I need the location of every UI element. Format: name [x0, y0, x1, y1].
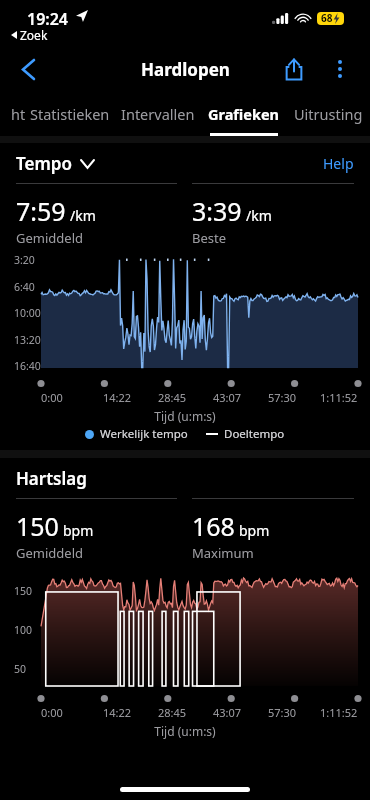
- button[interactable]: Terug: [8, 49, 48, 89]
- button[interactable]: Delen: [274, 49, 314, 89]
- staticText: bpm: [63, 521, 94, 540]
- staticText: Maximum: [192, 544, 254, 562]
- button[interactable]: Tempo: [16, 152, 94, 175]
- staticText: 50: [14, 662, 27, 676]
- staticText: 14:22: [103, 390, 132, 405]
- staticText: 0:00: [41, 390, 63, 405]
- staticText: 57:30: [268, 390, 297, 405]
- staticText: 28:45: [158, 705, 187, 720]
- staticText: 57:30: [268, 705, 297, 720]
- button[interactable]: ht: [0, 92, 26, 136]
- staticText: 3:39: [192, 194, 242, 228]
- staticText: Help: [323, 154, 354, 173]
- staticText: 28:45: [158, 390, 187, 405]
- staticText: Doeltempo: [224, 426, 285, 442]
- staticText: 150: [16, 509, 59, 543]
- staticText: 7:59: [16, 194, 66, 228]
- staticText: 16:40: [14, 359, 41, 373]
- staticText: 100: [14, 623, 33, 637]
- staticText: Uitrusting: [294, 104, 363, 124]
- button[interactable]: Help: [323, 154, 354, 173]
- staticText: Tempo: [16, 152, 72, 175]
- staticText: Hardlopen: [141, 58, 230, 81]
- button[interactable]: Uitrusting: [286, 92, 370, 136]
- staticText: Tijd (u:m:s): [0, 723, 370, 739]
- staticText: 14:22: [103, 705, 132, 720]
- staticText: Gemiddeld: [16, 544, 83, 562]
- staticText: 10:00: [14, 306, 41, 320]
- staticText: Hartslag: [16, 467, 87, 490]
- staticText: bpm: [239, 521, 270, 540]
- staticText: Statistieken: [30, 104, 110, 124]
- staticText: Intervallen: [121, 104, 195, 124]
- staticText: 6:40: [14, 280, 35, 294]
- staticText: 1:11:52: [320, 705, 358, 720]
- staticText: ht: [11, 104, 26, 124]
- staticText: 19:24: [27, 8, 69, 30]
- staticText: 43:07: [213, 390, 242, 405]
- staticText: Gemiddeld: [16, 229, 83, 247]
- staticText: 3:20: [14, 253, 35, 267]
- staticText: Grafieken: [208, 104, 280, 124]
- staticText: 168: [192, 509, 235, 543]
- staticText: Zoek: [20, 27, 48, 43]
- staticText: /km: [70, 206, 96, 225]
- button[interactable]: Grafieken: [202, 92, 286, 136]
- staticText: Werkelijk tempo: [100, 426, 188, 442]
- button[interactable]: Statistieken: [26, 92, 114, 136]
- staticText: /km: [246, 206, 272, 225]
- button[interactable]: Intervallen: [114, 92, 202, 136]
- button[interactable]: Meer opties: [320, 49, 360, 89]
- staticText: 13:20: [14, 333, 41, 347]
- staticText: 0:00: [41, 705, 63, 720]
- staticText: 68: [321, 11, 333, 25]
- staticText: Beste: [192, 229, 227, 247]
- staticText: 43:07: [213, 705, 242, 720]
- staticText: 1:11:52: [320, 390, 358, 405]
- staticText: 150: [14, 584, 33, 598]
- staticText: Tijd (u:m:s): [0, 408, 370, 424]
